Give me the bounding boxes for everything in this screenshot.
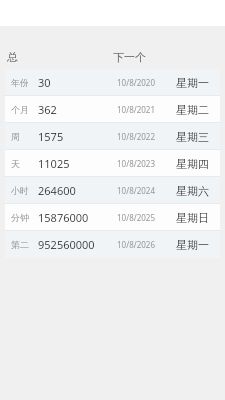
button[interactable]: 周 <box>5 123 220 150</box>
staticText: 下一个 <box>113 50 146 64</box>
staticText: 15876000 <box>38 210 89 225</box>
staticText: 星期一 <box>176 238 209 252</box>
staticText: 10/8/2023 <box>117 158 155 169</box>
button[interactable]: 天 <box>5 150 220 177</box>
staticText: 952560000 <box>38 237 95 252</box>
staticText: 264600 <box>38 183 76 198</box>
staticText: 10/8/2021 <box>117 104 155 115</box>
staticText: 星期一 <box>176 76 209 90</box>
staticText: 10/8/2025 <box>117 212 155 223</box>
staticText: 总 <box>7 50 18 64</box>
staticText: 10/8/2020 <box>117 77 155 88</box>
staticText: 星期日 <box>176 211 209 225</box>
button[interactable]: 个月 <box>5 96 220 123</box>
staticText: 星期二 <box>176 103 209 117</box>
staticText: 30 <box>38 75 51 90</box>
staticText: 星期六 <box>176 184 209 198</box>
staticText: 个月 <box>11 104 29 115</box>
staticText: 周 <box>11 131 20 142</box>
staticText: 11025 <box>38 156 70 171</box>
staticText: 10/8/2026 <box>117 239 155 250</box>
staticText: 1575 <box>38 129 64 144</box>
staticText: 10/8/2022 <box>117 131 155 142</box>
staticText: 小时 <box>11 185 29 196</box>
staticText: 天 <box>11 158 20 169</box>
button[interactable]: 第二 <box>5 231 220 258</box>
button[interactable]: 分钟 <box>5 204 220 231</box>
staticText: 10/8/2024 <box>117 185 155 196</box>
staticText: 362 <box>38 102 57 117</box>
button[interactable]: 年份 <box>5 69 220 96</box>
staticText: 分钟 <box>11 212 29 223</box>
button[interactable]: 小时 <box>5 177 220 204</box>
staticText: 年份 <box>11 77 29 88</box>
staticText: 第二 <box>11 239 29 250</box>
staticText: 星期四 <box>176 157 209 171</box>
staticText: 星期三 <box>176 130 209 144</box>
